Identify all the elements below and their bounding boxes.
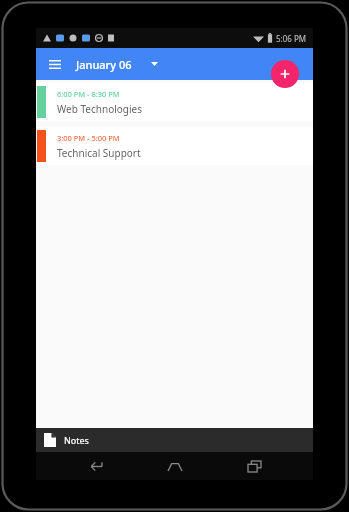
button[interactable]: Add event bbox=[271, 60, 299, 88]
button[interactable]: Notes bbox=[36, 428, 313, 452]
button[interactable]: 6:00 PM - 8:30 PM bbox=[36, 83, 313, 121]
staticText: Technical Support bbox=[57, 146, 141, 160]
staticText: 3:00 PM - 5:00 PM bbox=[57, 133, 120, 143]
staticText: 6:00 PM - 8:30 PM bbox=[57, 89, 120, 99]
button[interactable]: Home bbox=[155, 453, 195, 479]
staticText: 5:06 PM bbox=[276, 33, 307, 44]
button[interactable]: Back bbox=[75, 453, 115, 479]
staticText: Web Technologies bbox=[57, 102, 142, 116]
staticText: January 06 bbox=[76, 57, 132, 72]
button[interactable]: Change date bbox=[146, 56, 162, 72]
button[interactable]: Open navigation drawer bbox=[44, 53, 66, 75]
button[interactable]: 3:00 PM - 5:00 PM bbox=[36, 127, 313, 165]
button[interactable]: Recent apps bbox=[234, 453, 274, 479]
staticText: Notes bbox=[64, 434, 89, 446]
